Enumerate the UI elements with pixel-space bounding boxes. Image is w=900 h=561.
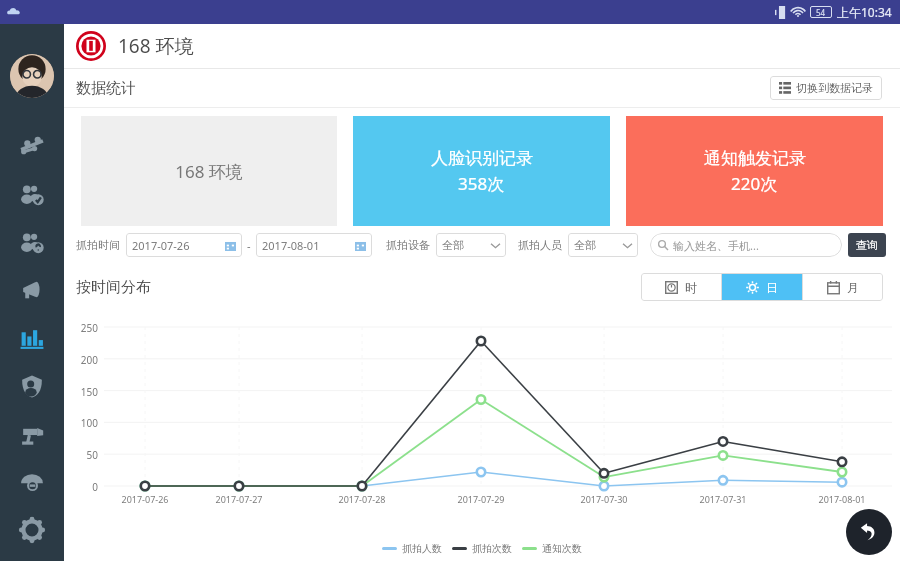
button[interactable]: Devices xyxy=(0,122,64,170)
staticText: 抓拍时间 xyxy=(76,238,120,252)
staticText: 抓拍人数 xyxy=(402,542,442,555)
staticText: 查询 xyxy=(856,238,878,252)
staticText: 220次 xyxy=(731,172,778,195)
button[interactable]: 抓拍次数 xyxy=(452,542,512,555)
staticText: 全部 xyxy=(574,238,623,252)
button[interactable]: Announcements xyxy=(0,266,64,314)
staticText: 全部 xyxy=(442,238,491,252)
button[interactable]: 人脸识别记录 xyxy=(353,116,610,226)
button[interactable]: Blocked xyxy=(0,458,64,506)
button[interactable]: 通知触发记录 xyxy=(626,116,883,226)
button[interactable]: 通知次数 xyxy=(522,542,582,555)
staticText: 0 xyxy=(66,480,98,494)
button[interactable]: 输入姓名、手机... xyxy=(650,233,842,257)
staticText: 2017-07-31 xyxy=(688,493,758,505)
staticText: 切换到数据记录 xyxy=(796,81,873,95)
staticText: 100 xyxy=(66,416,98,430)
staticText: 抓拍次数 xyxy=(472,542,512,555)
button[interactable]: Refresh xyxy=(846,509,892,555)
button[interactable]: Unknown users xyxy=(0,218,64,266)
button[interactable]: 2017-08-01 xyxy=(256,233,372,257)
staticText: 50 xyxy=(66,448,98,462)
staticText: 200 xyxy=(66,353,98,367)
button[interactable]: 查询 xyxy=(848,233,886,257)
staticText: 人脸识别记录 xyxy=(431,148,533,169)
button[interactable]: 月 xyxy=(803,273,883,301)
staticText: 54 xyxy=(816,7,826,18)
button[interactable]: 全部 xyxy=(436,233,506,257)
button[interactable]: 2017-07-26 xyxy=(126,233,242,257)
staticText: 2017-08-01 xyxy=(262,238,355,253)
staticText: 日 xyxy=(766,280,778,295)
staticText: 2017-07-27 xyxy=(204,493,274,505)
staticText: 按时间分布 xyxy=(76,278,151,297)
staticText: - xyxy=(247,238,251,253)
staticText: 2017-07-29 xyxy=(446,493,516,505)
staticText: 时 xyxy=(685,280,697,295)
button[interactable]: Profile xyxy=(10,54,54,98)
button[interactable]: Settings xyxy=(0,506,64,554)
button[interactable]: 全部 xyxy=(568,233,638,257)
button[interactable]: 168 环境 xyxy=(81,116,337,226)
button[interactable]: 时 xyxy=(641,273,721,301)
button[interactable]: Cameras xyxy=(0,410,64,458)
button[interactable]: Protection xyxy=(0,362,64,410)
staticText: 2017-07-28 xyxy=(327,493,397,505)
button[interactable]: Verified users xyxy=(0,170,64,218)
staticText: 通知次数 xyxy=(542,542,582,555)
staticText: 2017-08-01 xyxy=(807,493,877,505)
staticText: 168 环境 xyxy=(175,160,243,183)
staticText: 月 xyxy=(847,280,859,295)
button[interactable]: 日 xyxy=(722,273,802,301)
staticText: 168 环境 xyxy=(118,33,194,59)
staticText: 抓拍人员 xyxy=(518,238,562,252)
staticText: 输入姓名、手机... xyxy=(673,238,759,253)
staticText: 抓拍设备 xyxy=(386,238,430,252)
staticText: 通知触发记录 xyxy=(704,148,806,169)
staticText: 2017-07-30 xyxy=(569,493,639,505)
staticText: 上午10:34 xyxy=(837,4,892,20)
staticText: 150 xyxy=(66,385,98,399)
staticText: 2017-07-26 xyxy=(132,238,225,253)
staticText: 2017-07-26 xyxy=(110,493,180,505)
button[interactable]: 抓拍人数 xyxy=(382,542,442,555)
button[interactable]: Statistics xyxy=(0,314,64,362)
staticText: 358次 xyxy=(458,172,505,195)
staticText: 数据统计 xyxy=(76,79,136,98)
staticText: 250 xyxy=(66,321,98,335)
button[interactable]: 切换到数据记录 xyxy=(770,76,882,100)
